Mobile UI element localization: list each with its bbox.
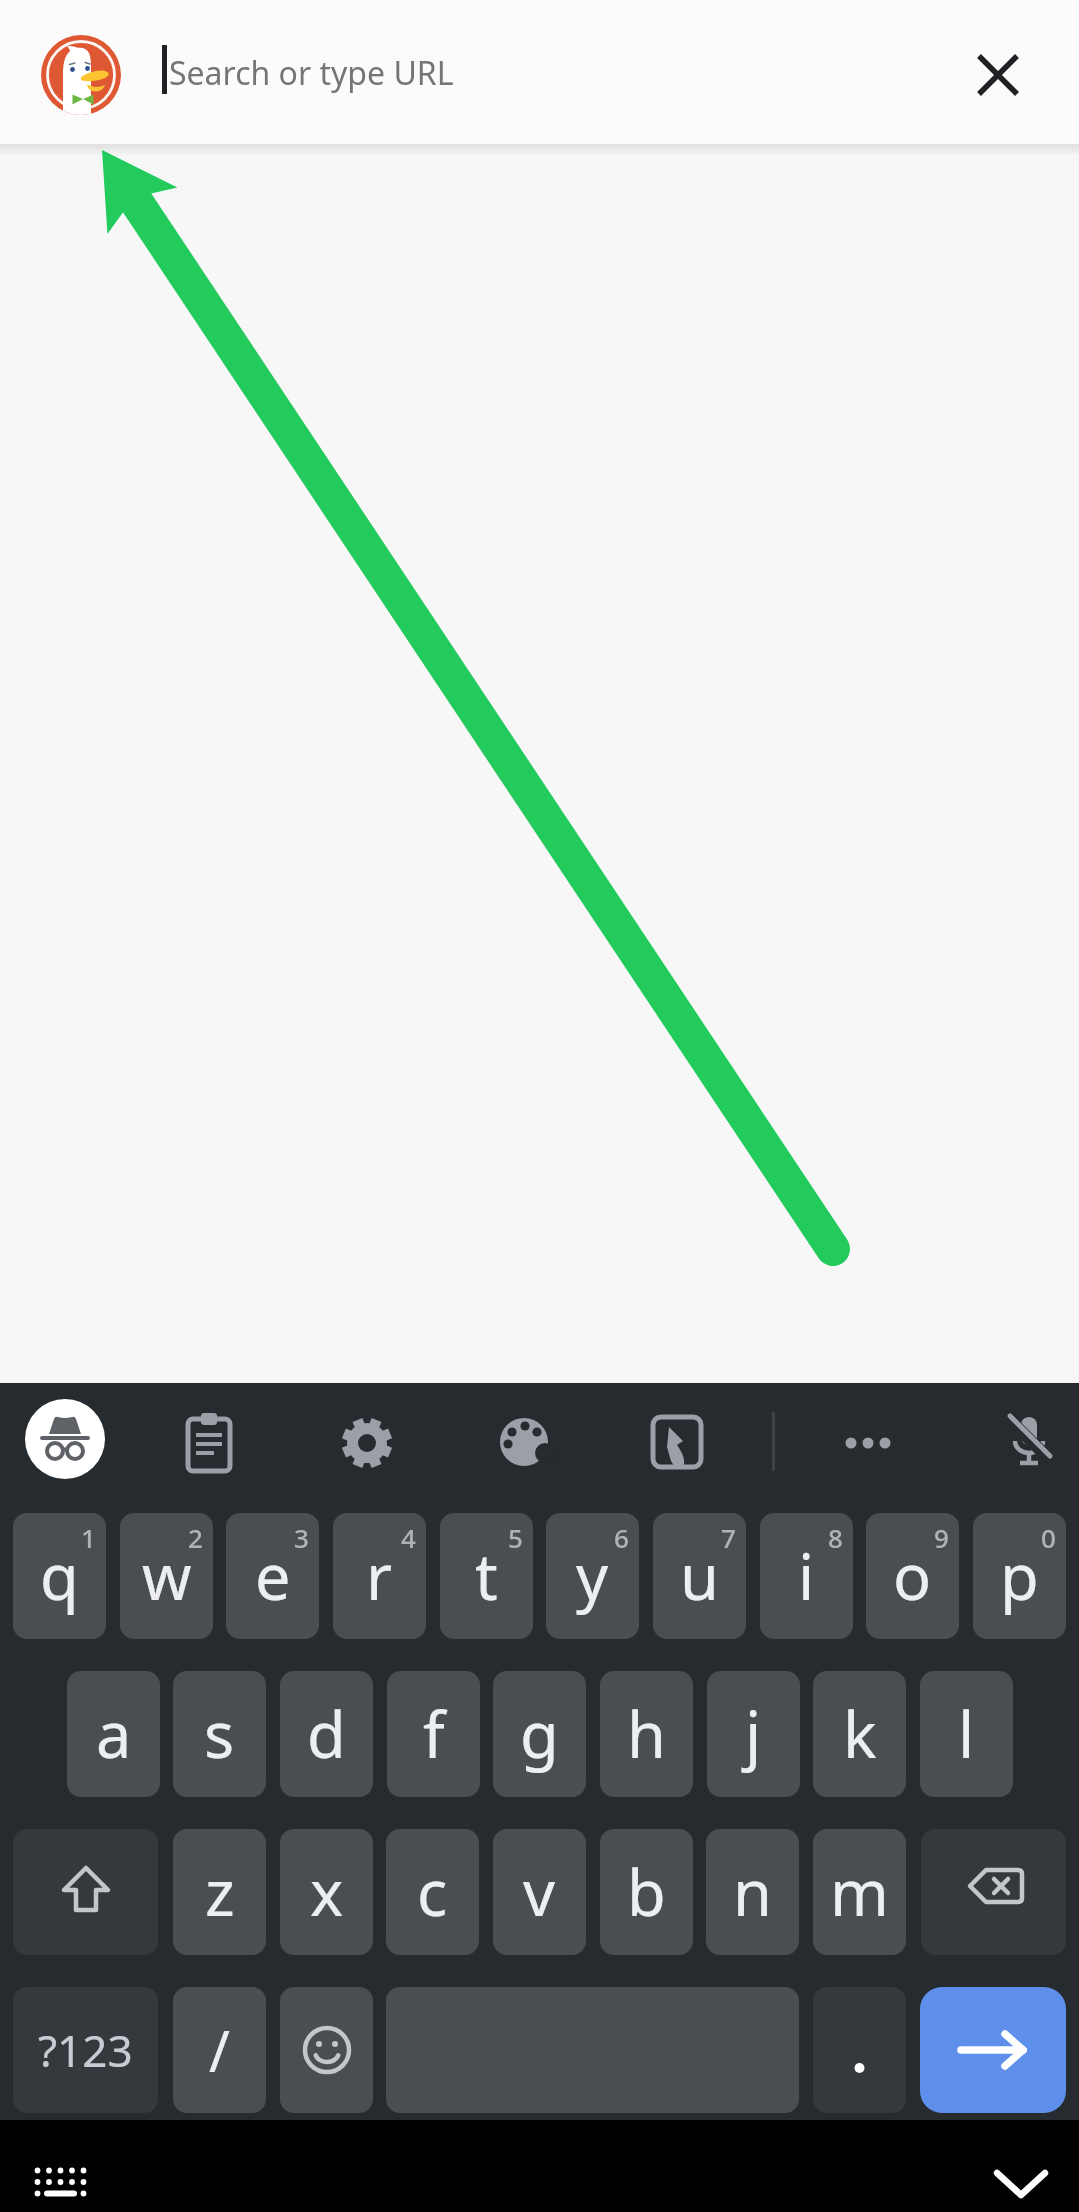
staticText: z: [205, 1849, 235, 1935]
button[interactable]: s: [173, 1671, 266, 1797]
staticText: p: [1000, 1533, 1039, 1619]
staticText: n: [733, 1849, 772, 1935]
staticText: 0: [1041, 1520, 1056, 1555]
staticText: 4: [401, 1520, 416, 1555]
button[interactable]: [828, 1401, 908, 1481]
button[interactable]: n: [706, 1829, 799, 1955]
button[interactable]: [484, 1401, 564, 1481]
button[interactable]: [41, 35, 121, 115]
button[interactable]: c: [386, 1829, 479, 1955]
staticText: f: [423, 1691, 445, 1777]
staticText: 9: [934, 1520, 949, 1555]
staticText: j: [745, 1691, 762, 1777]
button[interactable]: h: [600, 1671, 693, 1797]
button[interactable]: v: [493, 1829, 586, 1955]
button[interactable]: g: [493, 1671, 586, 1797]
button[interactable]: /: [173, 1987, 266, 2113]
staticText: o: [893, 1533, 932, 1619]
button[interactable]: u: [653, 1513, 746, 1639]
button[interactable]: t: [440, 1513, 533, 1639]
button[interactable]: [920, 1987, 1066, 2113]
staticText: i: [798, 1533, 815, 1619]
staticText: v: [523, 1849, 556, 1935]
button[interactable]: x: [280, 1829, 373, 1955]
button[interactable]: [962, 39, 1034, 111]
staticText: w: [142, 1533, 192, 1619]
button[interactable]: l: [920, 1671, 1013, 1797]
button[interactable]: [169, 1401, 249, 1481]
button[interactable]: o: [866, 1513, 959, 1639]
staticText: t: [475, 1533, 498, 1619]
button[interactable]: w: [120, 1513, 213, 1639]
button[interactable]: [327, 1401, 407, 1481]
button[interactable]: [981, 2158, 1061, 2210]
staticText: r: [366, 1533, 393, 1619]
button[interactable]: [25, 1399, 105, 1479]
button[interactable]: e: [226, 1513, 319, 1639]
staticText: 7: [721, 1520, 736, 1555]
staticText: u: [680, 1533, 719, 1619]
staticText: x: [310, 1849, 344, 1935]
button[interactable]: q: [13, 1513, 106, 1639]
staticText: a: [96, 1691, 132, 1777]
staticText: b: [627, 1849, 666, 1935]
button[interactable]: b: [600, 1829, 693, 1955]
staticText: 1: [81, 1520, 96, 1555]
staticText: 6: [614, 1520, 629, 1555]
button[interactable]: [988, 1401, 1068, 1481]
staticText: Search or type URL: [169, 51, 454, 95]
staticText: k: [843, 1691, 877, 1777]
button[interactable]: ?123: [13, 1987, 158, 2113]
staticText: l: [958, 1691, 975, 1777]
staticText: h: [627, 1691, 666, 1777]
staticText: q: [40, 1533, 79, 1619]
staticText: /: [209, 2012, 230, 2088]
button[interactable]: f: [387, 1671, 480, 1797]
staticText: c: [417, 1849, 448, 1935]
staticText: 3: [294, 1520, 309, 1555]
staticText: s: [204, 1691, 235, 1777]
button[interactable]: z: [173, 1829, 266, 1955]
button[interactable]: [280, 1987, 373, 2113]
button[interactable]: [18, 2156, 102, 2208]
staticText: 2: [188, 1520, 203, 1555]
staticText: m: [830, 1849, 889, 1935]
staticText: ?123: [38, 2020, 133, 2080]
button[interactable]: p: [973, 1513, 1066, 1639]
button[interactable]: [13, 1829, 158, 1955]
button[interactable]: j: [707, 1671, 800, 1797]
button[interactable]: y: [546, 1513, 639, 1639]
button[interactable]: m: [813, 1829, 906, 1955]
button[interactable]: a: [67, 1671, 160, 1797]
staticText: e: [255, 1533, 291, 1619]
staticText: y: [576, 1533, 609, 1619]
staticText: g: [520, 1691, 559, 1777]
button[interactable]: d: [280, 1671, 373, 1797]
staticText: 8: [828, 1520, 843, 1555]
button[interactable]: k: [813, 1671, 906, 1797]
button[interactable]: [637, 1401, 717, 1481]
button[interactable]: Search or type URL: [169, 0, 869, 146]
button[interactable]: [813, 1987, 906, 2113]
staticText: 5: [508, 1520, 523, 1555]
button[interactable]: i: [760, 1513, 853, 1639]
button[interactable]: [921, 1829, 1066, 1955]
staticText: d: [307, 1691, 346, 1777]
button[interactable]: r: [333, 1513, 426, 1639]
